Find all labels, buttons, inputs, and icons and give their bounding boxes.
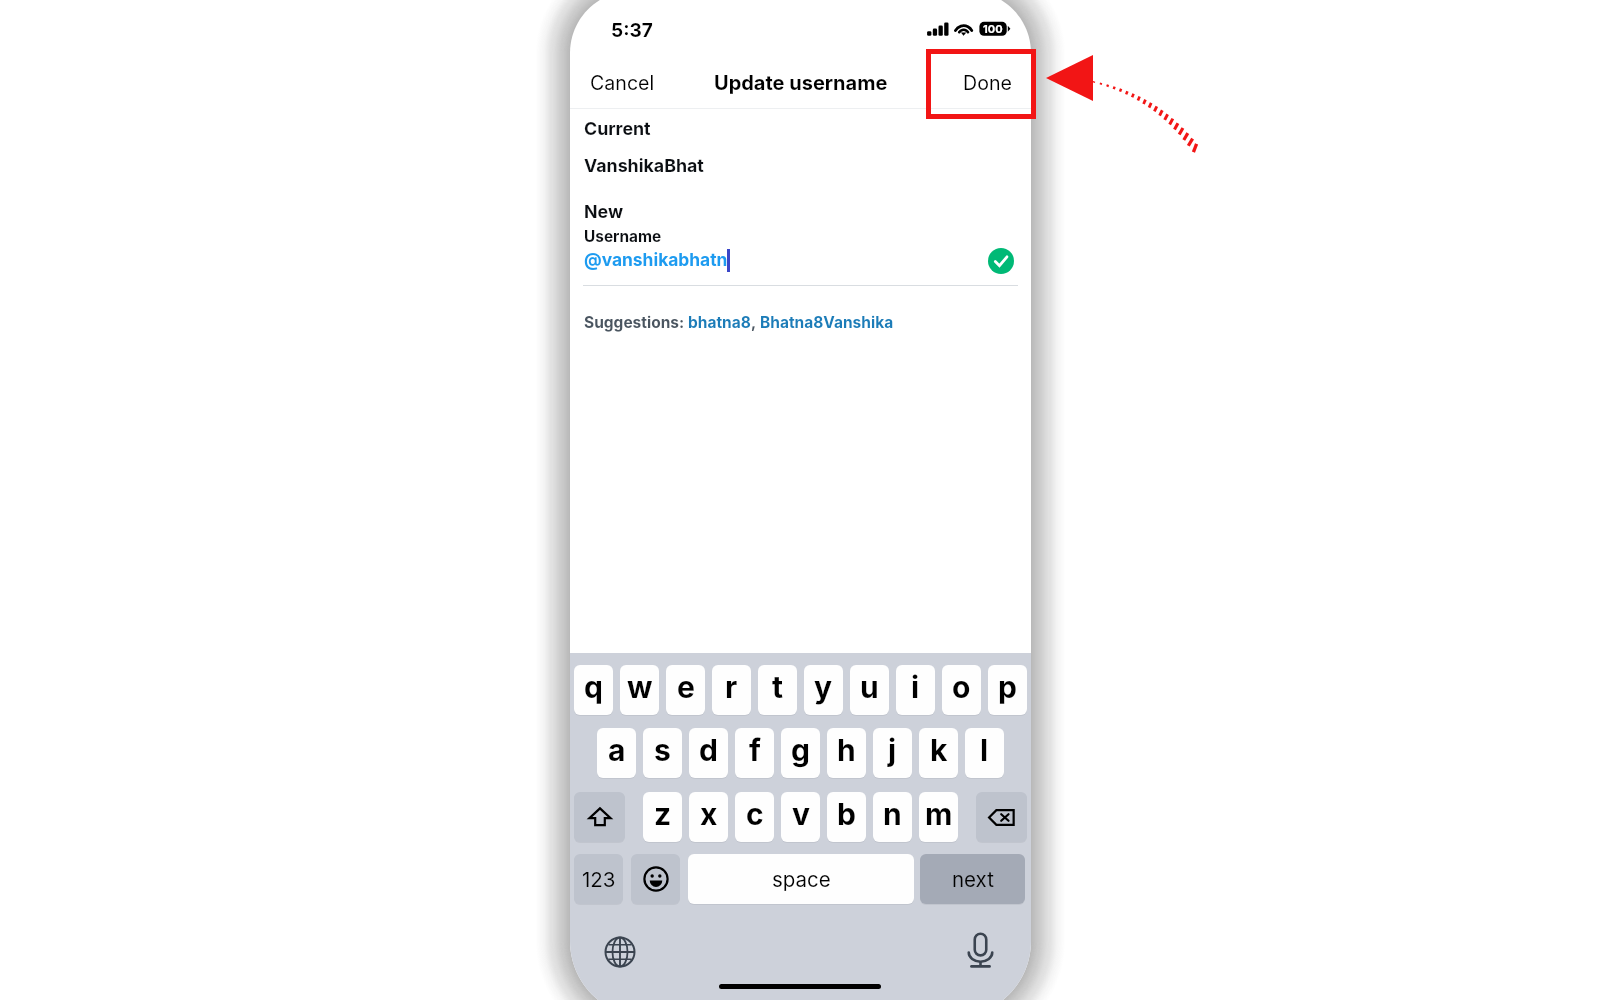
button[interactable]: t (758, 665, 797, 715)
button[interactable]: v (781, 792, 820, 842)
staticText: @vanshikabhatn (584, 249, 728, 270)
staticText: Current (584, 118, 651, 140)
staticText: t (772, 669, 783, 705)
button[interactable]: h (827, 728, 866, 778)
button[interactable]: l (965, 728, 1004, 778)
button[interactable]: 123 (574, 854, 623, 904)
staticText: j (888, 732, 897, 768)
staticText: space (772, 867, 831, 892)
button[interactable]: Dictate (968, 933, 993, 968)
button[interactable]: next (920, 854, 1025, 904)
button[interactable]: w (620, 665, 659, 715)
staticText: l (980, 732, 989, 768)
staticText: q (584, 669, 603, 705)
button[interactable]: Bhatna8Vanshika (760, 313, 894, 332)
staticText: m (925, 796, 953, 832)
staticText: s (654, 732, 671, 768)
other: Emoji (643, 866, 669, 892)
button[interactable]: Change keyboard (604, 936, 636, 968)
staticText: c (746, 796, 764, 832)
staticText: 123 (582, 867, 616, 892)
staticText: e (677, 669, 695, 705)
staticText: k (930, 732, 948, 768)
staticText: f (749, 732, 761, 768)
other: Backspace (988, 804, 1015, 831)
button[interactable]: z (643, 792, 682, 842)
button[interactable]: Cancel (590, 55, 655, 111)
staticText: next (952, 867, 994, 892)
button[interactable]: Backspace (976, 792, 1027, 842)
staticText: , (751, 313, 760, 332)
staticText: Done (963, 71, 1012, 95)
staticText: d (699, 732, 718, 768)
button[interactable]: Done (963, 55, 1012, 111)
button[interactable]: c (735, 792, 774, 842)
staticText: u (860, 669, 879, 705)
staticText: New (584, 201, 624, 223)
staticText: g (791, 732, 810, 768)
button[interactable]: f (735, 728, 774, 778)
button[interactable]: Emoji (631, 854, 680, 904)
button[interactable]: q (574, 665, 613, 715)
button[interactable]: j (873, 728, 912, 778)
button[interactable]: b (827, 792, 866, 842)
staticText: Cancel (590, 71, 655, 95)
staticText: Update username (714, 71, 888, 95)
button[interactable]: n (873, 792, 912, 842)
button[interactable]: u (850, 665, 889, 715)
button[interactable]: i (896, 665, 935, 715)
staticText: r (725, 669, 738, 705)
staticText: b (837, 796, 856, 832)
other: Username available (988, 248, 1014, 274)
staticText: n (883, 796, 902, 832)
staticText: Username (584, 227, 662, 246)
button[interactable]: bhatna8 (688, 313, 751, 332)
button[interactable]: r (712, 665, 751, 715)
staticText: w (627, 669, 653, 705)
staticText: v (792, 796, 810, 832)
staticText: o (952, 669, 971, 705)
button[interactable]: s (643, 728, 682, 778)
staticText: p (998, 669, 1017, 705)
staticText: i (911, 669, 920, 705)
button[interactable]: @vanshikabhatn (583, 245, 1018, 285)
button[interactable]: Shift (574, 792, 625, 842)
staticText: 5:37 (611, 19, 653, 42)
button[interactable]: m (919, 792, 958, 842)
button[interactable]: space (688, 854, 914, 904)
other: Shift (588, 805, 612, 829)
button[interactable]: g (781, 728, 820, 778)
staticText: VanshikaBhat (584, 155, 704, 177)
staticText: z (654, 796, 672, 832)
button[interactable]: d (689, 728, 728, 778)
staticText: 100 (983, 22, 1003, 35)
button[interactable]: e (666, 665, 705, 715)
button[interactable]: o (942, 665, 981, 715)
button[interactable]: k (919, 728, 958, 778)
staticText: y (814, 669, 833, 705)
staticText: a (608, 732, 626, 768)
staticText: Suggestions: (584, 313, 688, 332)
staticText: x (700, 796, 718, 832)
button[interactable]: a (597, 728, 636, 778)
button[interactable]: y (804, 665, 843, 715)
staticText: h (837, 732, 856, 768)
button[interactable]: x (689, 792, 728, 842)
button[interactable]: p (988, 665, 1027, 715)
